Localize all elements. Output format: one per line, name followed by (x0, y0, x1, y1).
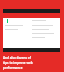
button[interactable] (3, 9, 31, 52)
staticText: And also dozens of tips to improve web p… (3, 56, 35, 69)
button[interactable] (31, 9, 60, 52)
